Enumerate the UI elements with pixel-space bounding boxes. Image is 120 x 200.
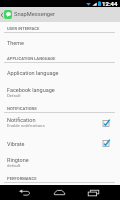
- staticText: SnapMessenger: [14, 11, 55, 18]
- staticText: Facebook language: [7, 87, 55, 93]
- staticText: Theme: [7, 40, 24, 46]
- button[interactable]: Facebook language: [0, 83, 120, 103]
- staticText: Notification: [7, 117, 36, 123]
- button[interactable]: Theme: [0, 32, 120, 52]
- button[interactable]: Navigate up: [0, 7, 4, 22]
- button[interactable]: Notification: [0, 113, 120, 133]
- staticText: APPLICATION LANGUAGE: [7, 56, 56, 61]
- staticText: NOTIFICATIONS: [7, 106, 37, 111]
- staticText: 12:44: [102, 0, 118, 7]
- staticText: Enable notifications: [7, 123, 45, 128]
- button[interactable]: Home: [44, 185, 75, 200]
- button[interactable]: Ringtone: [0, 153, 120, 173]
- button[interactable]: Vibrate: [0, 133, 120, 153]
- staticText: default: [7, 163, 21, 168]
- staticText: PERFORMANCE: [7, 176, 37, 181]
- staticText: USER INTERFACE: [7, 26, 40, 31]
- staticText: Vibrate: [7, 141, 25, 147]
- button[interactable]: Application language: [0, 62, 120, 82]
- button[interactable]: Back: [9, 185, 40, 200]
- staticText: Default: [7, 93, 21, 98]
- button[interactable]: Recent apps: [78, 185, 109, 200]
- staticText: Application language: [7, 70, 59, 76]
- staticText: Ringtone: [7, 157, 29, 163]
